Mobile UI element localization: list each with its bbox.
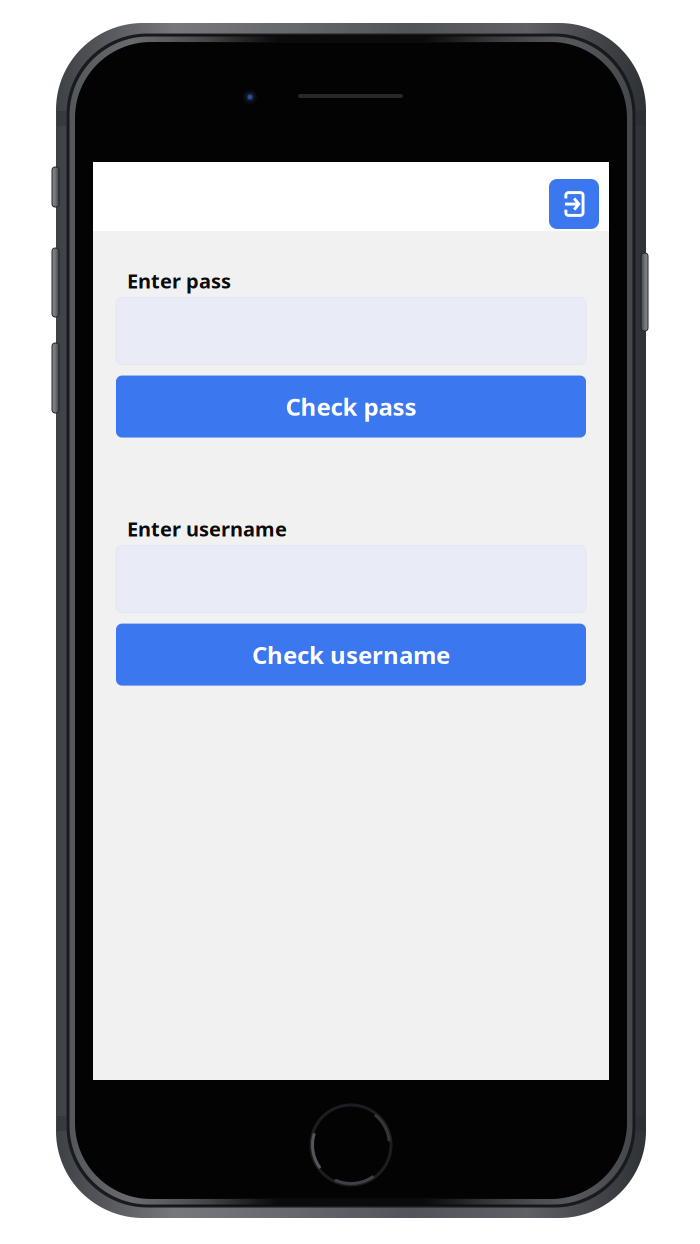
staticText: Enter username	[127, 516, 287, 542]
staticText: Enter pass	[127, 267, 231, 294]
button[interactable]: Log in	[549, 179, 599, 229]
staticText: Check username	[252, 639, 450, 671]
button[interactable]: Check pass	[116, 376, 586, 438]
button[interactable]: Check username	[116, 624, 586, 686]
staticText: Check pass	[285, 391, 416, 422]
